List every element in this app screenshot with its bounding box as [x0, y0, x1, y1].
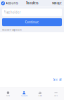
- button[interactable]: More: [48, 87, 64, 100]
- button[interactable]: Continue: [0, 18, 64, 26]
- staticText: Transfers: [26, 1, 38, 5]
- button[interactable]: Account: [16, 87, 32, 100]
- button[interactable]: See all: [53, 78, 64, 81]
- staticText: See all: [53, 78, 62, 81]
- button[interactable]: Manage: [52, 0, 64, 7]
- staticText: Continue: [25, 20, 39, 24]
- button[interactable]: Account: [0, 0, 18, 7]
- staticText: Activity: [38, 95, 42, 97]
- button[interactable]: Home: [0, 87, 16, 100]
- staticText: Home: [6, 95, 10, 97]
- staticText: More: [54, 95, 58, 97]
- button[interactable]: Activity: [32, 87, 48, 100]
- staticText: Manage: [52, 1, 62, 5]
- staticText: Placeholder: [4, 11, 21, 14]
- staticText: Accounts: [6, 1, 18, 5]
- staticText: Footer caption: [2, 28, 22, 32]
- staticText: Account: [21, 95, 27, 97]
